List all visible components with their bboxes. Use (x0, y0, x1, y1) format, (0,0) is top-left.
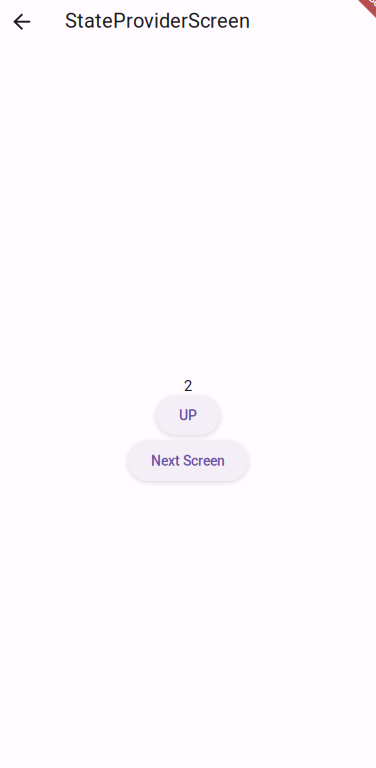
staticText: DEBUG (357, 0, 376, 7)
button[interactable]: UP (156, 396, 220, 435)
staticText: UP (179, 407, 197, 424)
staticText: 2 (184, 377, 192, 395)
staticText: StateProviderScreen (65, 9, 250, 33)
button[interactable]: Next Screen (128, 441, 248, 481)
button[interactable]: Back (1, 1, 41, 41)
staticText: Next Screen (151, 453, 225, 469)
